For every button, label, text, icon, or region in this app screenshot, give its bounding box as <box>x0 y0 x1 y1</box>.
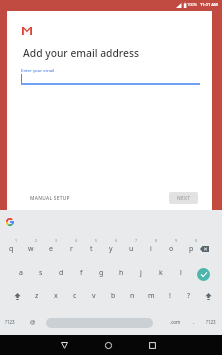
staticText: ?123 <box>206 319 216 325</box>
staticText: 8 <box>155 238 158 243</box>
button[interactable]: ! <box>161 286 179 306</box>
staticText: j <box>140 268 142 278</box>
staticText: o <box>169 244 174 254</box>
button[interactable]: s <box>32 263 50 283</box>
staticText: 2 <box>35 238 38 243</box>
staticText: .com <box>170 319 181 325</box>
staticText: u <box>129 244 134 254</box>
staticText: 3 <box>55 238 58 243</box>
staticText: 7 <box>135 238 138 243</box>
button[interactable] <box>196 239 213 259</box>
staticText: k <box>159 268 163 278</box>
staticText: y <box>109 244 113 254</box>
staticText: g <box>99 268 104 278</box>
button[interactable]: @ <box>24 312 42 332</box>
button[interactable]: t <box>82 239 100 259</box>
button[interactable]: v <box>85 286 103 306</box>
staticText: t <box>90 244 93 254</box>
staticText: s <box>39 268 43 278</box>
staticText: n <box>130 291 135 301</box>
staticText: @ <box>30 318 36 326</box>
button[interactable]: a <box>12 263 30 283</box>
button[interactable]: q <box>2 239 20 259</box>
button[interactable]: g <box>92 263 110 283</box>
button[interactable]: c <box>66 286 84 306</box>
staticText: p <box>189 244 194 254</box>
staticText: Enter your email <box>21 67 55 73</box>
button[interactable]: MANUAL SETUP <box>23 191 78 205</box>
staticText: x <box>54 291 58 301</box>
button[interactable]: ?123 <box>1 312 19 332</box>
staticText: Add your email address <box>23 46 139 60</box>
staticText: z <box>35 291 39 301</box>
button[interactable] <box>2 214 18 230</box>
button[interactable] <box>100 337 116 353</box>
staticText: a <box>19 268 23 278</box>
staticText: e <box>49 244 53 254</box>
button[interactable] <box>197 268 210 281</box>
button[interactable]: i <box>142 239 160 259</box>
staticText: 100% <box>187 2 198 7</box>
button[interactable]: NEXT <box>169 192 198 204</box>
button[interactable]: h <box>112 263 130 283</box>
button[interactable]: l <box>172 263 190 283</box>
button[interactable] <box>56 337 72 353</box>
button[interactable]: z <box>28 286 46 306</box>
button[interactable]: .com <box>166 312 184 332</box>
button[interactable]: k <box>152 263 170 283</box>
button[interactable]: ?123 <box>202 312 220 332</box>
button[interactable] <box>199 286 217 306</box>
staticText: h <box>119 268 124 278</box>
staticText: 9 <box>175 238 178 243</box>
button[interactable]: u <box>122 239 140 259</box>
staticText: m <box>148 291 155 301</box>
button[interactable]: f <box>72 263 90 283</box>
staticText: NEXT <box>177 195 191 202</box>
staticText: ? <box>187 291 191 301</box>
staticText: b <box>111 291 116 301</box>
button[interactable]: n <box>123 286 141 306</box>
staticText: d <box>59 268 64 278</box>
staticText: q <box>9 244 14 254</box>
button[interactable] <box>144 337 160 353</box>
button[interactable]: b <box>104 286 122 306</box>
button[interactable]: x <box>47 286 65 306</box>
button[interactable]: j <box>132 263 150 283</box>
button[interactable]: ? <box>180 286 198 306</box>
button[interactable]: e <box>42 239 60 259</box>
button[interactable]: w <box>22 239 40 259</box>
staticText: f <box>80 268 83 278</box>
staticText: ?123 <box>5 319 15 325</box>
button[interactable]: m <box>142 286 160 306</box>
button[interactable]: p <box>182 239 200 259</box>
staticText: 5 <box>95 238 98 243</box>
staticText: 6 <box>115 238 118 243</box>
staticText: i <box>150 244 152 254</box>
button[interactable] <box>46 318 153 328</box>
staticText: l <box>180 268 182 278</box>
staticText: r <box>70 244 73 254</box>
button[interactable]: y <box>102 239 120 259</box>
staticText: v <box>92 291 96 301</box>
staticText: 1 <box>15 238 18 243</box>
button[interactable] <box>8 286 26 306</box>
staticText: w <box>28 244 34 254</box>
staticText: 11:11 AM <box>200 2 218 7</box>
staticText: . <box>193 318 195 326</box>
button[interactable]: o <box>162 239 180 259</box>
button[interactable]: d <box>52 263 70 283</box>
staticText: MANUAL SETUP <box>30 195 70 202</box>
button[interactable]: r <box>62 239 80 259</box>
staticText: 0 <box>195 238 198 243</box>
staticText: 4 <box>75 238 78 243</box>
staticText: c <box>73 291 77 301</box>
staticText: ! <box>169 291 171 301</box>
